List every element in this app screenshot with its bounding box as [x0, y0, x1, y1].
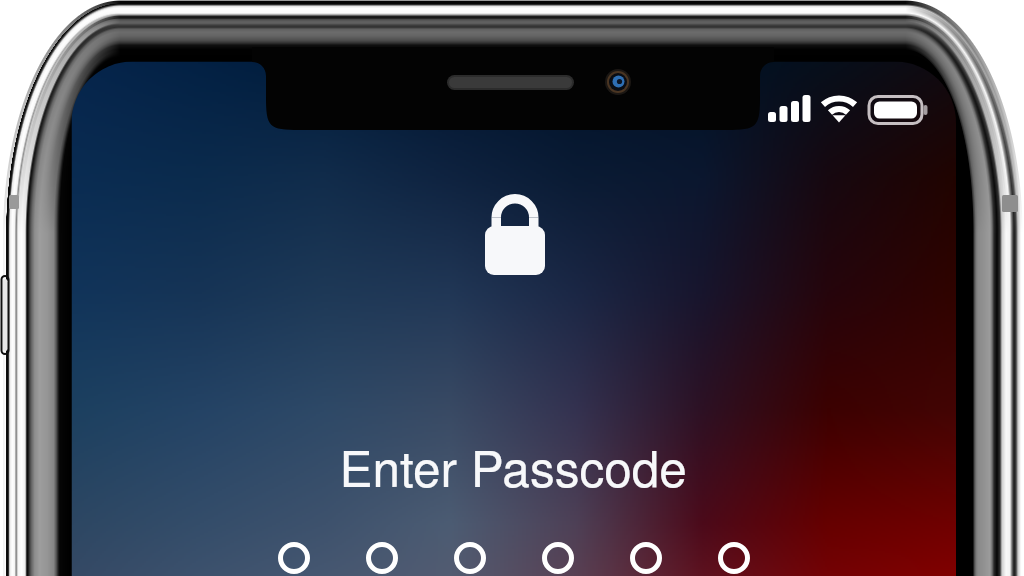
button[interactable]: iPhone lock screen, Enter Passcode [0, 0, 1024, 576]
